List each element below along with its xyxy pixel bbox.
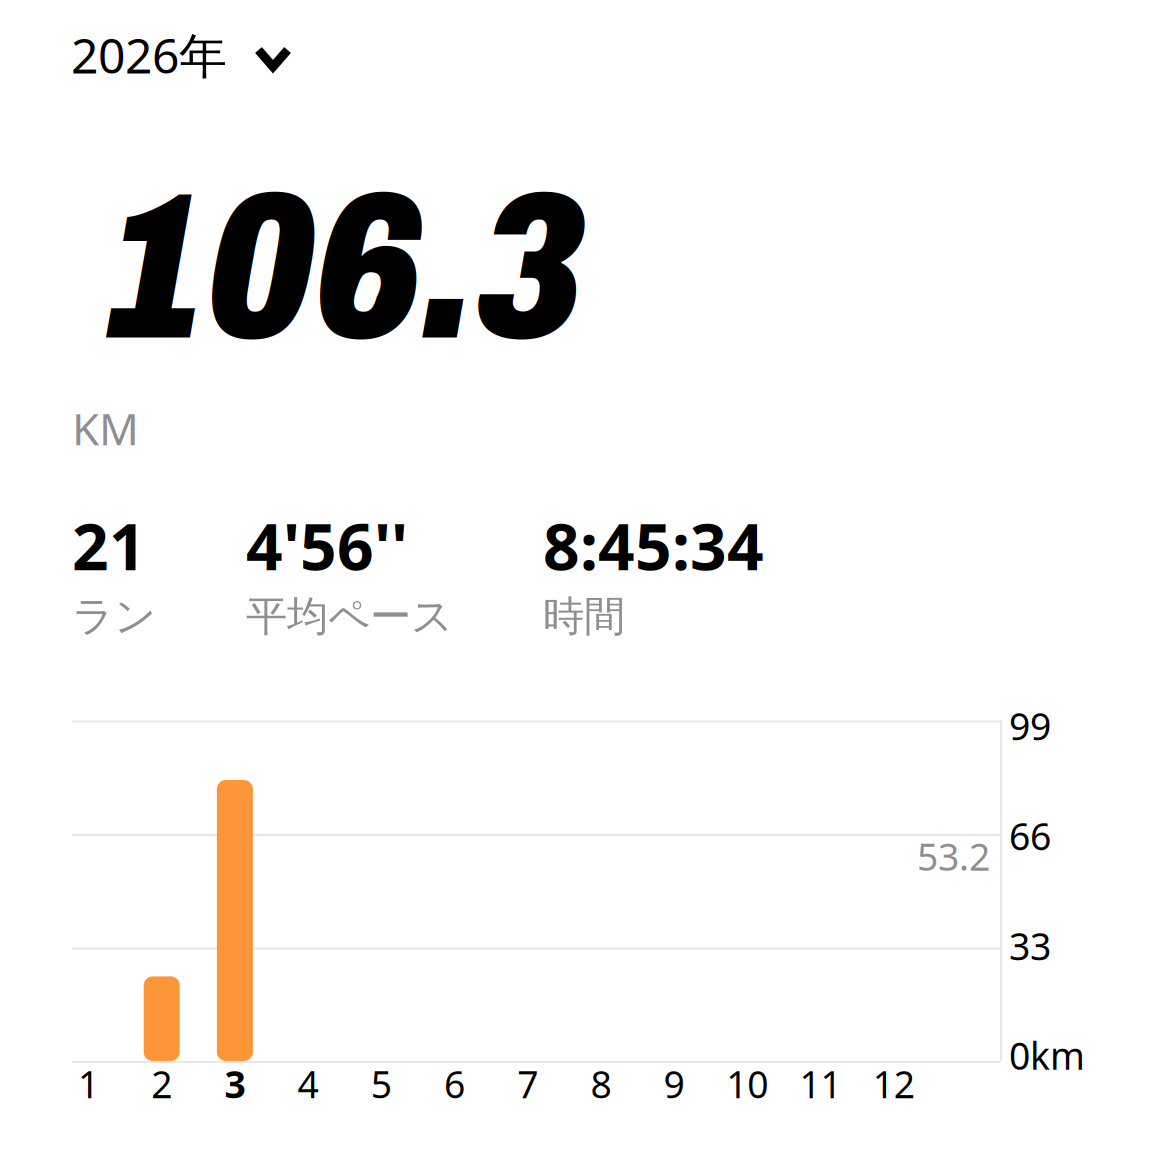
staticText: 33 — [1009, 921, 1051, 971]
staticText: 5 — [371, 1059, 392, 1109]
staticText: 2026年 — [71, 23, 227, 87]
staticText: 3 — [224, 1059, 245, 1109]
staticText: 21 — [72, 503, 146, 588]
staticText: 6 — [444, 1059, 465, 1109]
staticText: 7 — [517, 1059, 538, 1109]
staticText: 66 — [1009, 811, 1051, 861]
staticText: 53.2 — [917, 831, 990, 881]
staticText: 11 — [799, 1059, 841, 1109]
staticText: 4 — [298, 1059, 319, 1109]
staticText: ラン — [72, 591, 156, 642]
staticText: 時間 — [543, 591, 625, 642]
button[interactable]: 2026年 を選択 — [57, 11, 306, 99]
staticText: 平均ペース — [246, 591, 453, 642]
staticText: 4'56'' — [246, 503, 408, 588]
staticText: 1 — [78, 1059, 99, 1109]
staticText: 9 — [664, 1059, 685, 1109]
staticText: 8:45:34 — [543, 503, 764, 588]
staticText: 12 — [873, 1059, 915, 1109]
staticText: 0km — [1009, 1030, 1085, 1080]
staticText: 2 — [151, 1059, 172, 1109]
staticText: KM — [72, 399, 139, 457]
staticText: 8 — [590, 1059, 611, 1109]
staticText: 10 — [726, 1059, 768, 1109]
staticText: 106.3 — [108, 155, 584, 381]
staticText: 99 — [1009, 701, 1051, 751]
